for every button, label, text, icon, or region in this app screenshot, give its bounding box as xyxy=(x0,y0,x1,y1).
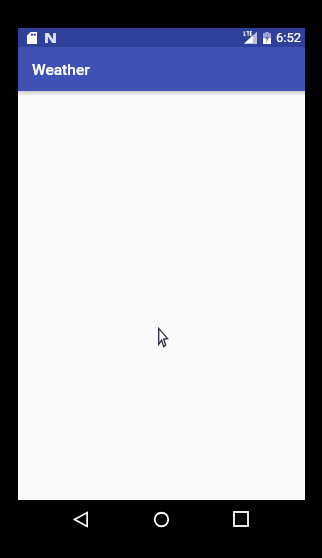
button[interactable]: Back xyxy=(59,497,103,541)
button[interactable]: Home xyxy=(139,497,183,541)
staticText: Weather xyxy=(32,61,90,79)
button[interactable]: Recent apps xyxy=(219,497,263,541)
staticText: 6:52 xyxy=(276,30,302,45)
